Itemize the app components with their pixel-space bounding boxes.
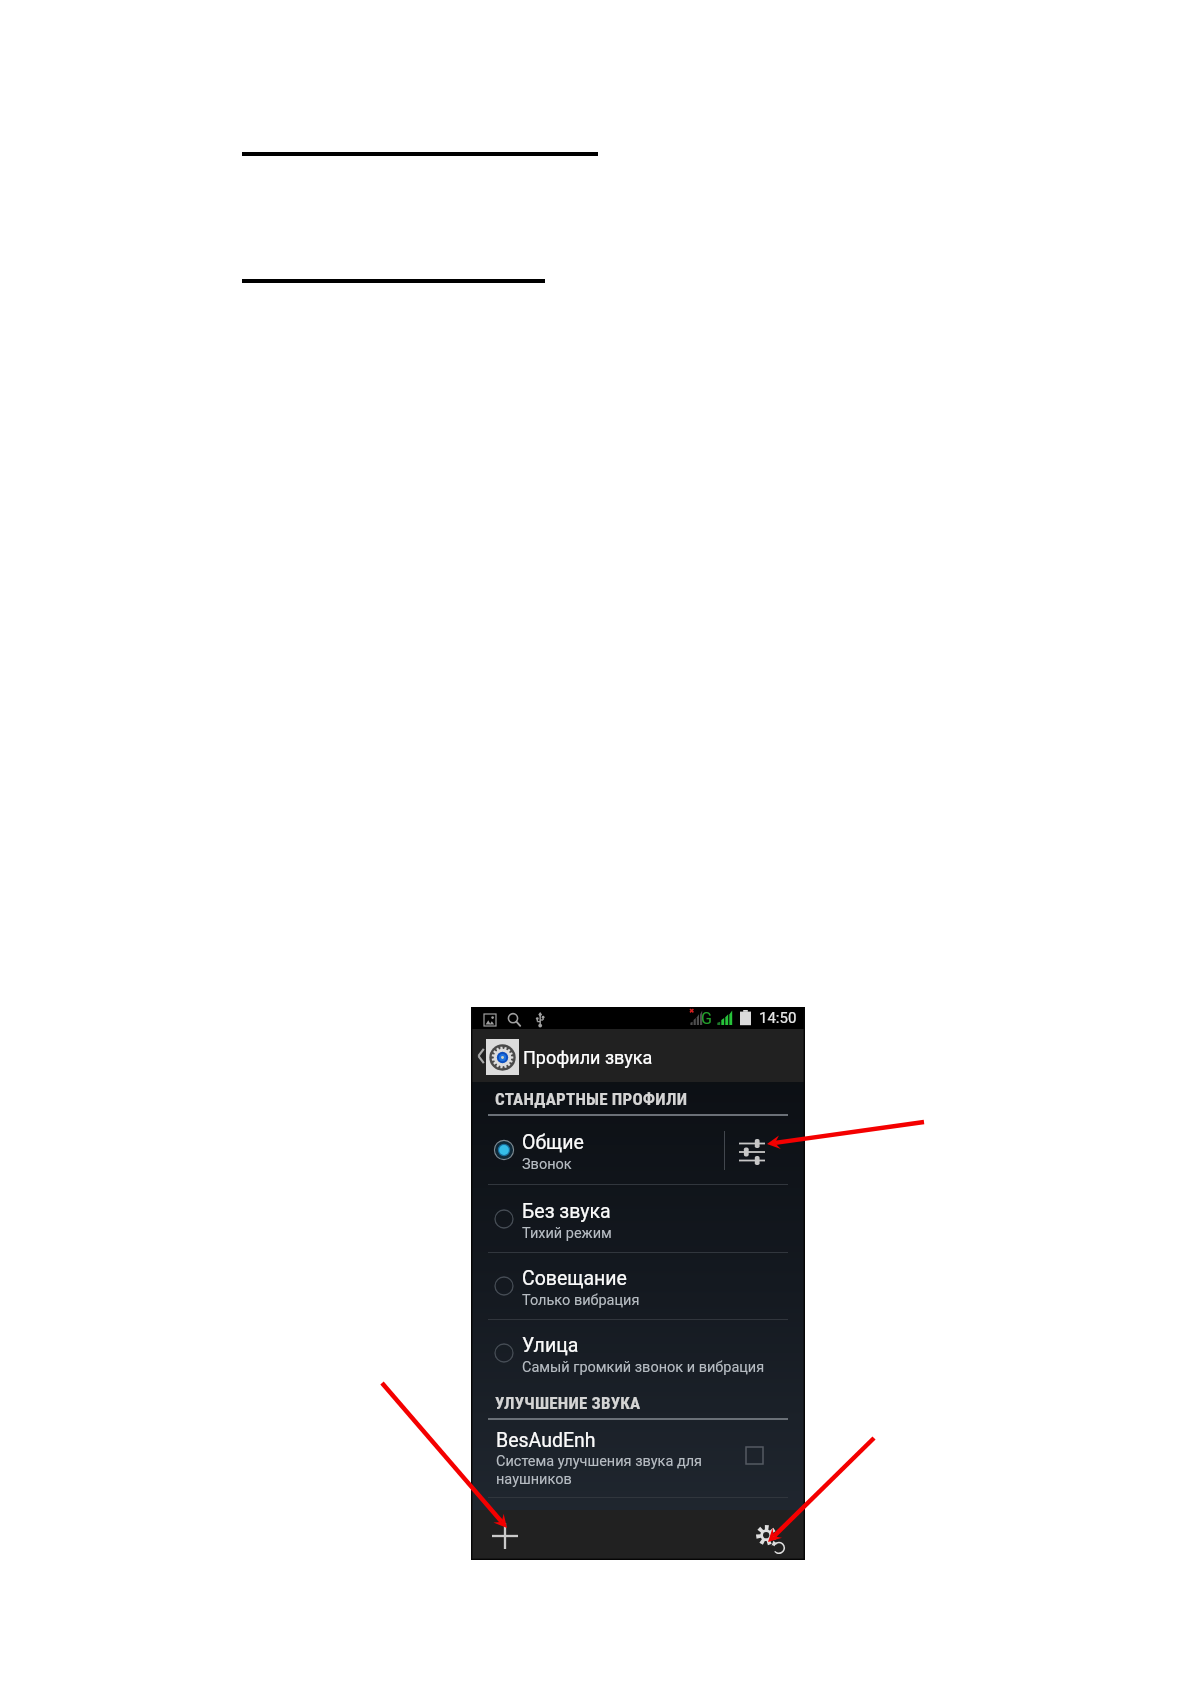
staticText: 14:50 — [759, 1009, 797, 1027]
staticText: BesAudEnh — [496, 1429, 596, 1452]
staticText: Тихий режим — [522, 1225, 612, 1242]
staticText: Общие — [522, 1131, 584, 1154]
button[interactable]: Без звука — [471, 1185, 805, 1252]
button[interactable]: BesAudEnh — [471, 1420, 805, 1497]
staticText: G — [701, 1009, 712, 1028]
staticText: Самый громкий звонок и вибрация — [522, 1359, 765, 1376]
button[interactable]: Совещание — [471, 1253, 805, 1319]
staticText: Без звука — [522, 1200, 611, 1223]
staticText: УЛУЧШЕНИЕ ЗВУКА — [495, 1393, 641, 1413]
staticText: Совещание — [522, 1267, 627, 1290]
staticText: СТАНДАРТНЫЕ ПРОФИЛИ — [495, 1089, 688, 1109]
button[interactable]: Профили звука — [471, 1029, 805, 1082]
staticText: Система улучшения звука для наушников — [496, 1453, 702, 1488]
button[interactable]: Сброс настроек — [739, 1510, 805, 1560]
button[interactable]: Включить BesAudEnh — [744, 1420, 805, 1497]
button[interactable]: Настройки профиля — [725, 1116, 805, 1184]
button[interactable]: Добавить профиль — [477, 1510, 543, 1560]
staticText: Звонок — [522, 1156, 572, 1173]
staticText: Улица — [522, 1334, 579, 1357]
staticText: Только вибрация — [522, 1292, 640, 1309]
button[interactable]: Общие — [471, 1116, 805, 1184]
button[interactable]: Улица — [471, 1320, 805, 1386]
staticText: Профили звука — [523, 1047, 653, 1068]
